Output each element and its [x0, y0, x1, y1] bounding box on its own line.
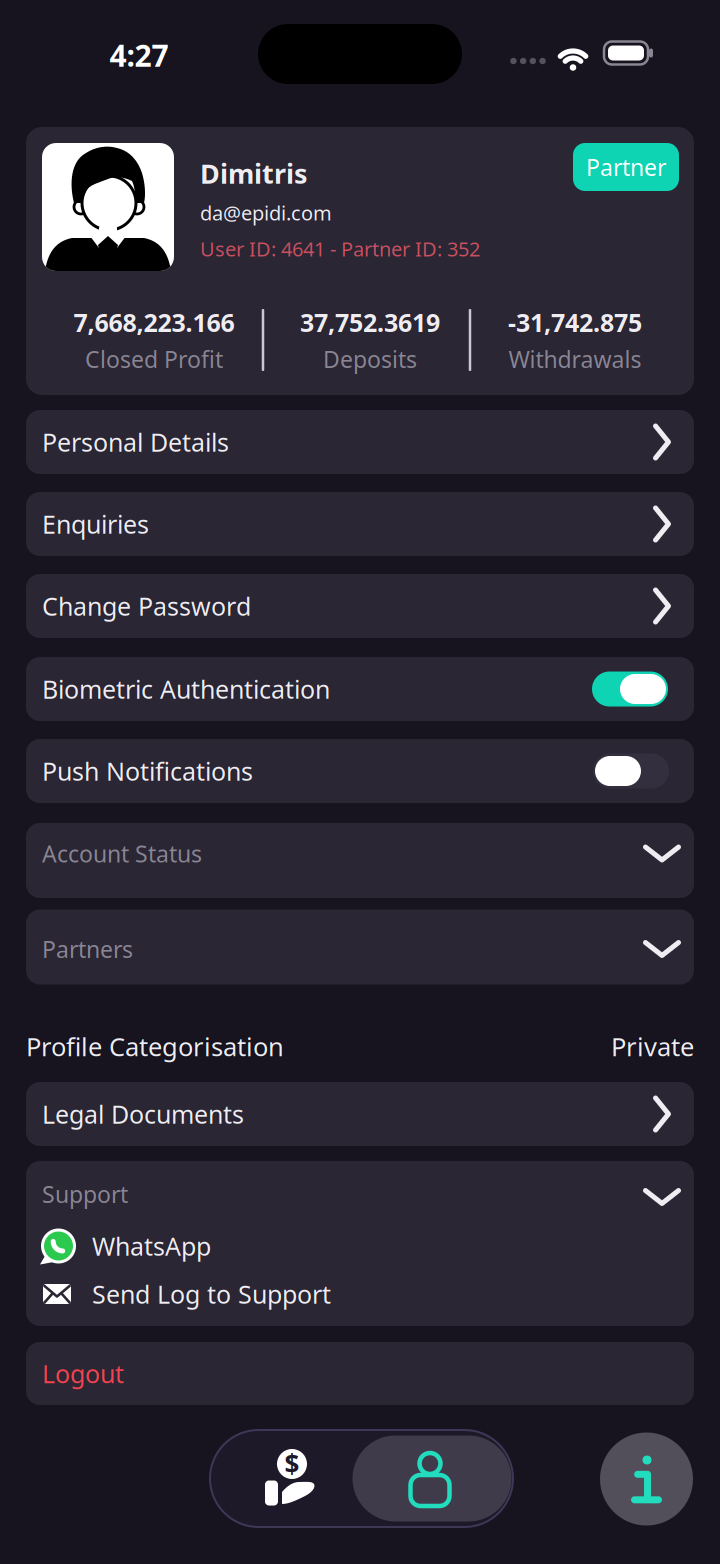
button[interactable]: Legal Documents: [26, 1082, 694, 1146]
staticText: Partner: [586, 151, 666, 183]
staticText: Enquiries: [42, 507, 149, 541]
button[interactable]: Payments: [263, 1447, 319, 1507]
button[interactable]: Logout: [26, 1342, 694, 1405]
button[interactable]: Partners: [26, 909, 694, 984]
staticText: Support: [42, 1178, 128, 1210]
button[interactable]: Send Log to Support: [26, 1270, 426, 1318]
button[interactable]: Push Notifications: [593, 753, 669, 788]
staticText: Push Notifications: [42, 754, 253, 788]
staticText: User ID: 4641 - Partner ID: 352: [200, 235, 480, 262]
button[interactable]: Personal Details: [26, 410, 694, 474]
staticText: Biometric Authentication: [42, 672, 330, 706]
button[interactable]: Support: [26, 1161, 694, 1227]
button[interactable]: Biometric Authentication: [592, 671, 668, 706]
staticText: Logout: [42, 1356, 124, 1390]
staticText: Private: [611, 1029, 694, 1064]
button[interactable]: WhatsApp: [26, 1222, 356, 1270]
staticText: Deposits: [323, 343, 417, 375]
staticText: Personal Details: [42, 425, 229, 459]
staticText: $: [284, 1446, 299, 1482]
staticText: Partners: [42, 933, 133, 965]
button[interactable]: Profile: [408, 1450, 452, 1506]
staticText: 37,752.3619: [300, 305, 440, 339]
staticText: Account Status: [42, 838, 202, 869]
button[interactable]: Account Status: [26, 823, 694, 898]
staticText: 4:27: [109, 35, 168, 75]
staticText: Send Log to Support: [92, 1277, 331, 1311]
button[interactable]: Enquiries: [26, 492, 694, 556]
staticText: Dimitris: [200, 155, 308, 192]
staticText: -31,742.875: [508, 305, 642, 339]
staticText: Change Password: [42, 589, 251, 623]
staticText: 7,668,223.166: [73, 305, 234, 339]
staticText: WhatsApp: [92, 1229, 211, 1263]
staticText: Withdrawals: [508, 343, 641, 375]
staticText: da@epidi.com: [200, 199, 332, 226]
staticText: Legal Documents: [42, 1097, 244, 1131]
button[interactable]: Info: [600, 1432, 693, 1525]
staticText: Closed Profit: [85, 343, 223, 375]
button[interactable]: Change Password: [26, 574, 694, 638]
staticText: Profile Categorisation: [26, 1029, 284, 1064]
